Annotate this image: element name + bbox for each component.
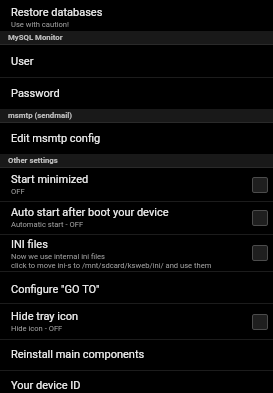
staticText: Reinstall main components: [11, 348, 145, 361]
button[interactable]: Configure "GO TO": [0, 272, 273, 303]
staticText: Use with caution!: [11, 20, 69, 29]
button[interactable]: Password: [0, 78, 273, 109]
staticText: User: [11, 55, 34, 68]
staticText: Hide icon - OFF: [11, 324, 63, 333]
staticText: Hide tray icon: [11, 310, 79, 323]
button[interactable]: INI files: [0, 235, 273, 271]
button[interactable]: Auto start after boot your device: [0, 202, 273, 234]
staticText: click to move ini-s to /mnt/sdcard/ksweb…: [11, 261, 212, 270]
staticText: Automatic start - OFF: [11, 220, 84, 229]
button[interactable]: Restore databases: [0, 0, 273, 31]
staticText: Edit msmtp config: [11, 132, 101, 145]
staticText: Start minimized: [11, 173, 89, 186]
staticText: Restore databases: [11, 6, 103, 19]
button[interactable]: Edit msmtp config: [0, 123, 273, 154]
staticText: Other settings: [8, 156, 58, 165]
button[interactable]: Your device ID: [0, 371, 273, 393]
button[interactable]: Hide tray icon: [0, 304, 273, 339]
staticText: Your device ID: [11, 379, 81, 392]
staticText: Password: [11, 87, 60, 100]
button[interactable]: Reinstall main components: [0, 340, 273, 370]
staticText: msmtp (sendmail): [8, 111, 73, 120]
button[interactable]: User: [0, 45, 273, 77]
staticText: MySQL Monitor: [8, 33, 63, 42]
button[interactable]: Start minimized: [0, 168, 273, 201]
staticText: Configure "GO TO": [11, 283, 100, 296]
staticText: INI files: [11, 238, 48, 251]
staticText: OFF: [11, 187, 25, 196]
staticText: Now we use internal ini files: [11, 252, 105, 261]
staticText: Auto start after boot your device: [11, 206, 169, 219]
